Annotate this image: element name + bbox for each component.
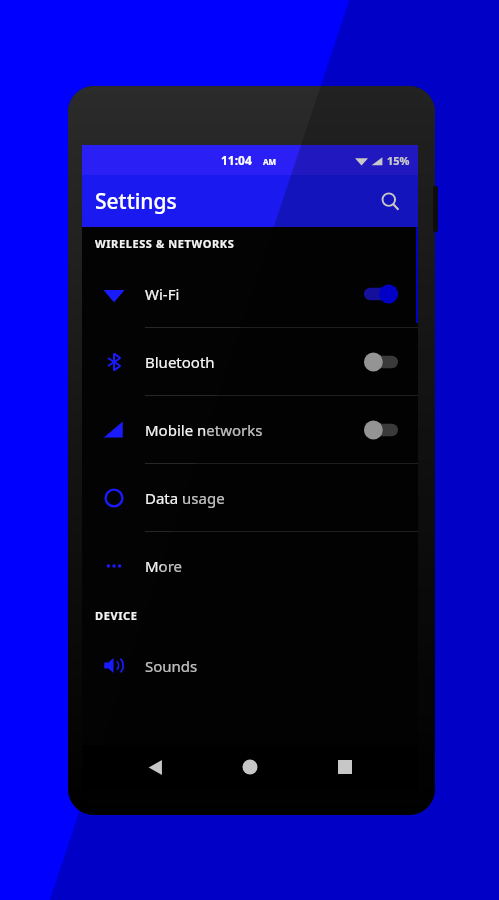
button[interactable]: Toggle on (364, 284, 398, 304)
staticText: Wi-Fi (145, 284, 364, 304)
staticText: DEVICE (95, 608, 138, 623)
button[interactable]: More (82, 532, 418, 599)
staticText: AM (263, 156, 277, 167)
button[interactable]: Data usage (82, 464, 418, 531)
button[interactable]: Back (133, 745, 177, 789)
button[interactable]: Sounds (82, 632, 418, 699)
staticText: WIRELESS & NETWORKS (95, 236, 235, 251)
staticText: Settings (95, 187, 177, 216)
button[interactable]: Recent apps (323, 745, 367, 789)
staticText: 11:04 (221, 152, 252, 168)
button[interactable]: Search (370, 181, 410, 221)
staticText: Bluetooth (145, 352, 364, 372)
button[interactable]: Toggle off (364, 352, 398, 372)
button[interactable]: Mobile networks (82, 396, 418, 463)
button[interactable]: Wi-Fi (82, 260, 418, 327)
button[interactable]: Home (228, 745, 272, 789)
staticText: Mobile networks (145, 420, 364, 440)
staticText: Data usage (145, 488, 418, 508)
staticText: 15% (387, 153, 410, 168)
staticText: More (145, 556, 418, 576)
staticText: Sounds (145, 656, 418, 676)
button[interactable]: Toggle off (364, 420, 398, 440)
button[interactable]: Bluetooth (82, 328, 418, 395)
